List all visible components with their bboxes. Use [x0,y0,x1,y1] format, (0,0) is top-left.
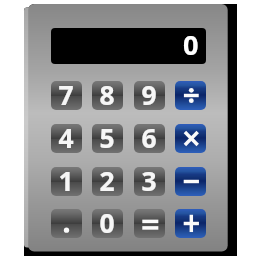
button[interactable]: 7 [51,81,82,110]
button[interactable]: 8 [92,81,123,110]
button[interactable]: Add [175,209,206,238]
button[interactable]: Decimal point [51,209,82,238]
button[interactable]: 5 [92,124,123,153]
button[interactable]: 9 [134,81,165,110]
button[interactable]: 2 [92,167,123,196]
button[interactable] [51,28,206,64]
button[interactable]: Subtract [175,167,206,196]
button[interactable]: 0 [92,209,123,238]
button[interactable]: 3 [134,167,165,196]
button[interactable]: 4 [51,124,82,153]
button[interactable]: Divide [175,81,206,110]
button[interactable]: Equals [134,209,165,238]
button[interactable]: Multiply [175,124,206,153]
button[interactable]: 1 [51,167,82,196]
button[interactable]: 6 [134,124,165,153]
